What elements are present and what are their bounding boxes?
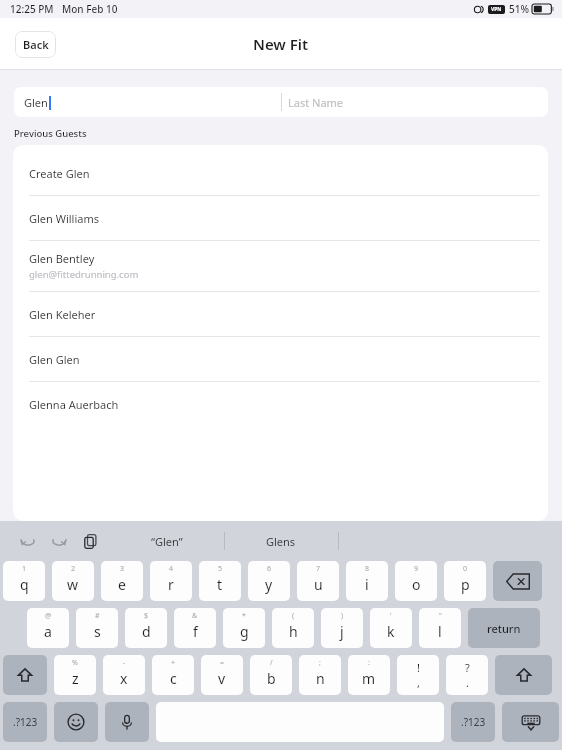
staticText: l	[438, 622, 442, 641]
staticText: d	[142, 622, 151, 641]
staticText: o	[412, 575, 421, 594]
staticText: f	[193, 622, 198, 641]
staticText: s	[94, 622, 101, 641]
button[interactable]: Emoji	[54, 702, 98, 742]
staticText: 51%	[509, 2, 529, 16]
staticText: 2	[71, 564, 76, 574]
button[interactable]: ;	[299, 655, 341, 695]
button[interactable]: 1	[3, 561, 45, 601]
button[interactable]: Glen Glen	[21, 337, 540, 382]
button[interactable]: &	[174, 608, 216, 648]
button[interactable]: /	[250, 655, 292, 695]
staticText: k	[387, 622, 395, 641]
staticText: “Glen”	[151, 534, 183, 549]
button[interactable]: 7	[297, 561, 339, 601]
staticText: .?123	[13, 715, 38, 729]
button[interactable]: Undo	[16, 529, 40, 553]
button[interactable]: $	[125, 608, 167, 648]
staticText: Mon Feb 10	[62, 2, 118, 16]
staticText: Glenna Auerbach	[29, 397, 119, 412]
button[interactable]: 4	[150, 561, 192, 601]
button[interactable]: Hide keyboard	[502, 702, 559, 742]
staticText: w	[67, 575, 79, 594]
staticText: =	[220, 658, 225, 668]
staticText: a	[44, 622, 52, 641]
staticText: 5	[218, 564, 223, 574]
button[interactable]: Redo	[47, 529, 71, 553]
button[interactable]: 6	[248, 561, 290, 601]
staticText: 1	[22, 564, 27, 574]
staticText: z	[72, 669, 79, 688]
staticText: '	[390, 611, 392, 621]
staticText: j	[340, 622, 344, 641]
staticText: Glen Williams	[29, 211, 100, 226]
button[interactable]: Shift	[3, 655, 47, 695]
button[interactable]: !	[397, 655, 439, 695]
staticText: Glen Keleher	[29, 307, 96, 322]
staticText: 0	[463, 564, 468, 574]
button[interactable]: 9	[395, 561, 437, 601]
button[interactable]: .?123	[451, 702, 495, 742]
staticText: e	[118, 575, 126, 594]
button[interactable]: “Glen”	[120, 521, 214, 561]
button[interactable]: Glen Bentley	[21, 241, 540, 292]
staticText: -	[123, 658, 126, 668]
button[interactable]: '	[370, 608, 412, 648]
button[interactable]: Back	[15, 31, 56, 58]
staticText: b	[267, 669, 276, 688]
staticText: i	[365, 575, 369, 594]
staticText: ?	[465, 660, 470, 675]
staticText: Back	[23, 37, 49, 52]
button[interactable]: Paste	[78, 529, 102, 553]
staticText: VPN	[491, 6, 502, 13]
staticText: 7	[316, 564, 321, 574]
staticText: glen@fittedrunning.com	[29, 268, 139, 281]
staticText: 9	[414, 564, 419, 574]
button[interactable]: :	[348, 655, 390, 695]
button[interactable]: *	[223, 608, 265, 648]
staticText: q	[20, 575, 29, 594]
staticText: &	[192, 611, 198, 621]
staticText: 4	[169, 564, 174, 574]
button[interactable]: 0	[444, 561, 486, 601]
staticText: #	[95, 611, 100, 621]
button[interactable]: Backspace	[493, 561, 542, 601]
button[interactable]: Glens	[234, 521, 328, 561]
button[interactable]: 8	[346, 561, 388, 601]
staticText: h	[289, 622, 298, 641]
button[interactable]: )	[321, 608, 363, 648]
staticText: @	[45, 611, 52, 621]
button[interactable]: 2	[52, 561, 94, 601]
staticText: "	[439, 611, 442, 621]
button[interactable]: Create Glen	[21, 151, 540, 196]
button[interactable]: =	[201, 655, 243, 695]
button[interactable]: Shift	[495, 655, 552, 695]
button[interactable]: .?123	[3, 702, 47, 742]
button[interactable]: -	[103, 655, 145, 695]
button[interactable]: Glenna Auerbach	[21, 382, 540, 426]
staticText: u	[314, 575, 323, 594]
button[interactable]: #	[76, 608, 118, 648]
staticText: New Fit	[253, 34, 309, 54]
staticText: 6	[267, 564, 272, 574]
button[interactable]: Glen Keleher	[21, 292, 540, 337]
staticText: ,	[417, 675, 420, 690]
button[interactable]: @	[27, 608, 69, 648]
button[interactable]: 5	[199, 561, 241, 601]
staticText: m	[362, 669, 376, 688]
button[interactable]: Glen Williams	[21, 196, 540, 241]
staticText: %	[72, 658, 78, 668]
button[interactable]: +	[152, 655, 194, 695]
button[interactable]: ?	[446, 655, 488, 695]
staticText: (	[292, 611, 295, 621]
button[interactable]: 3	[101, 561, 143, 601]
staticText: )	[341, 611, 344, 621]
button[interactable]: (	[272, 608, 314, 648]
staticText: Glen	[24, 95, 48, 110]
button[interactable]: %	[54, 655, 96, 695]
button[interactable]: Dictate	[105, 702, 149, 742]
button[interactable]: return	[468, 608, 540, 648]
button[interactable]: "	[419, 608, 461, 648]
staticText: *	[242, 611, 246, 621]
